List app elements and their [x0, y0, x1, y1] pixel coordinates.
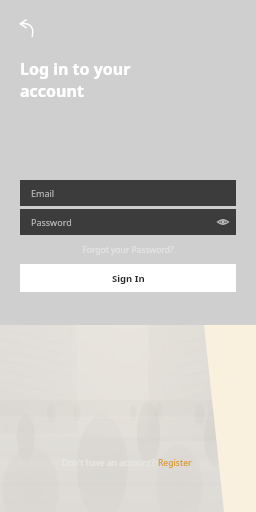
button[interactable]: Back: [12, 14, 44, 46]
button[interactable]: Show password: [210, 209, 236, 235]
staticText: Email: [31, 187, 55, 199]
button[interactable]: Don't have an account?: [62, 457, 192, 469]
staticText: Log in to your: [20, 58, 131, 80]
staticText: Register: [158, 457, 192, 469]
button[interactable]: Sign In: [20, 264, 236, 292]
staticText: Don't have an account?: [62, 457, 155, 469]
button[interactable]: Email: [20, 180, 236, 206]
staticText: Sign In: [112, 272, 145, 285]
staticText: account: [20, 80, 84, 102]
button[interactable]: Forgot your Password?: [76, 242, 180, 258]
button[interactable]: Password: [20, 209, 236, 235]
staticText: Password: [31, 216, 72, 228]
